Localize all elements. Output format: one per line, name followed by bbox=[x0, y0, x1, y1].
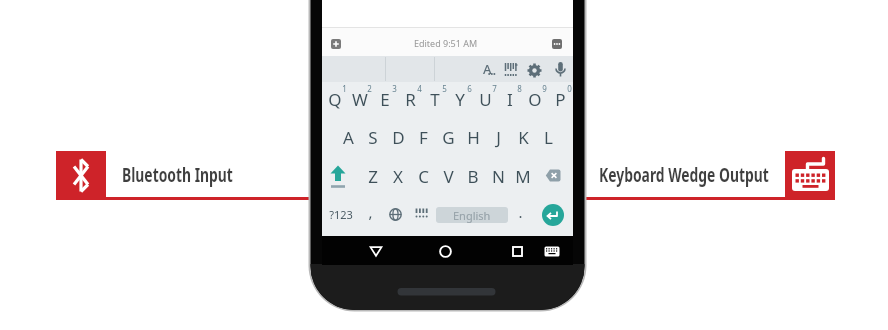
button[interactable]: 1 bbox=[329, 76, 359, 100]
staticText: Bluetooth Input bbox=[122, 162, 233, 188]
button[interactable]: 0 bbox=[554, 76, 584, 100]
staticText: E bbox=[380, 88, 390, 111]
staticText: 6 bbox=[467, 83, 472, 94]
button[interactable]: K bbox=[508, 125, 538, 149]
staticText: 8 bbox=[517, 83, 522, 94]
button[interactable]: Bluetooth Input bbox=[122, 160, 382, 189]
staticText: 1 bbox=[342, 83, 347, 94]
button[interactable]: N bbox=[483, 164, 513, 188]
button[interactable]: T bbox=[420, 87, 450, 111]
staticText: Keyboard Wedge Output bbox=[599, 162, 769, 188]
staticText: G bbox=[442, 126, 455, 149]
staticText: O bbox=[528, 88, 542, 111]
button[interactable]: 8 bbox=[504, 76, 534, 100]
staticText: I bbox=[507, 88, 513, 111]
staticText: B bbox=[467, 165, 479, 188]
staticText: Z bbox=[368, 165, 378, 188]
button[interactable]: 7 bbox=[479, 76, 509, 100]
button[interactable]: 5 bbox=[429, 76, 459, 100]
button[interactable] bbox=[369, 246, 383, 257]
button[interactable]: E bbox=[370, 87, 400, 111]
button[interactable]: O bbox=[520, 87, 550, 111]
staticText: Y bbox=[455, 88, 465, 111]
staticText: R bbox=[405, 88, 416, 111]
button[interactable] bbox=[389, 208, 402, 221]
button[interactable]: Q bbox=[320, 87, 350, 111]
button[interactable] bbox=[545, 169, 561, 182]
button[interactable]: A bbox=[333, 125, 363, 149]
staticText: Edited 9:51 AM bbox=[414, 37, 478, 49]
staticText: 0 bbox=[567, 83, 572, 94]
button[interactable]: H bbox=[458, 125, 488, 149]
button[interactable]: English bbox=[436, 207, 508, 223]
staticText: L bbox=[544, 126, 553, 149]
button[interactable]: C bbox=[408, 164, 438, 188]
staticText: 5 bbox=[442, 83, 447, 94]
staticText: 3 bbox=[392, 83, 397, 94]
button[interactable]: X bbox=[383, 164, 413, 188]
staticText: . bbox=[518, 202, 523, 222]
button[interactable] bbox=[504, 62, 518, 77]
button[interactable] bbox=[331, 39, 341, 49]
staticText: 2 bbox=[367, 83, 372, 94]
button[interactable]: ?123 bbox=[326, 202, 356, 226]
staticText: S bbox=[368, 126, 378, 149]
staticText: 9 bbox=[542, 83, 547, 94]
staticText: J bbox=[496, 126, 501, 149]
staticText: D bbox=[392, 126, 405, 149]
button[interactable]: 2 bbox=[354, 76, 384, 100]
staticText: X bbox=[393, 165, 403, 188]
staticText: A bbox=[483, 60, 492, 78]
button[interactable]: B bbox=[458, 164, 488, 188]
button[interactable]: 3 bbox=[379, 76, 409, 100]
staticText: M bbox=[515, 165, 531, 188]
button[interactable] bbox=[542, 204, 564, 226]
button[interactable]: L bbox=[533, 125, 563, 149]
staticText: 7 bbox=[492, 83, 497, 94]
button[interactable]: 4 bbox=[404, 76, 434, 100]
button[interactable]: F bbox=[408, 125, 438, 149]
button[interactable]: R bbox=[395, 87, 425, 111]
button[interactable] bbox=[512, 246, 523, 257]
staticText: C bbox=[418, 165, 429, 188]
staticText: N bbox=[492, 165, 505, 188]
button[interactable] bbox=[56, 151, 106, 200]
button[interactable]: V bbox=[433, 164, 463, 188]
button[interactable]: D bbox=[383, 125, 413, 149]
button[interactable]: A bbox=[478, 58, 496, 80]
button[interactable]: I bbox=[495, 87, 525, 111]
button[interactable]: Y bbox=[445, 87, 475, 111]
button[interactable] bbox=[439, 245, 452, 258]
button[interactable]: , bbox=[355, 200, 385, 224]
staticText: F bbox=[419, 126, 428, 149]
staticText: , bbox=[368, 202, 373, 222]
button[interactable] bbox=[329, 164, 347, 189]
button[interactable] bbox=[552, 39, 562, 49]
staticText: Q bbox=[328, 88, 342, 111]
button[interactable]: 6 bbox=[454, 76, 484, 100]
button[interactable]: M bbox=[508, 164, 538, 188]
button[interactable]: Z bbox=[358, 164, 388, 188]
staticText: H bbox=[467, 126, 480, 149]
button[interactable] bbox=[554, 61, 567, 79]
button[interactable]: P bbox=[545, 87, 575, 111]
button[interactable]: 9 bbox=[529, 76, 559, 100]
button[interactable] bbox=[785, 151, 835, 200]
button[interactable]: J bbox=[483, 125, 513, 149]
button[interactable]: U bbox=[470, 87, 500, 111]
staticText: T bbox=[430, 88, 440, 111]
button[interactable] bbox=[544, 246, 560, 257]
staticText: ?123 bbox=[329, 207, 353, 222]
staticText: U bbox=[479, 88, 492, 111]
button[interactable] bbox=[415, 208, 429, 219]
button[interactable]: W bbox=[345, 87, 375, 111]
button[interactable]: G bbox=[433, 125, 463, 149]
button[interactable] bbox=[527, 63, 542, 78]
button[interactable]: Keyboard Wedge Output bbox=[599, 160, 859, 189]
staticText: K bbox=[518, 126, 529, 149]
button[interactable]: S bbox=[358, 125, 388, 149]
staticText: V bbox=[443, 165, 454, 188]
staticText: 4 bbox=[417, 83, 422, 94]
staticText: A bbox=[343, 126, 354, 149]
button[interactable]: . bbox=[505, 200, 535, 224]
